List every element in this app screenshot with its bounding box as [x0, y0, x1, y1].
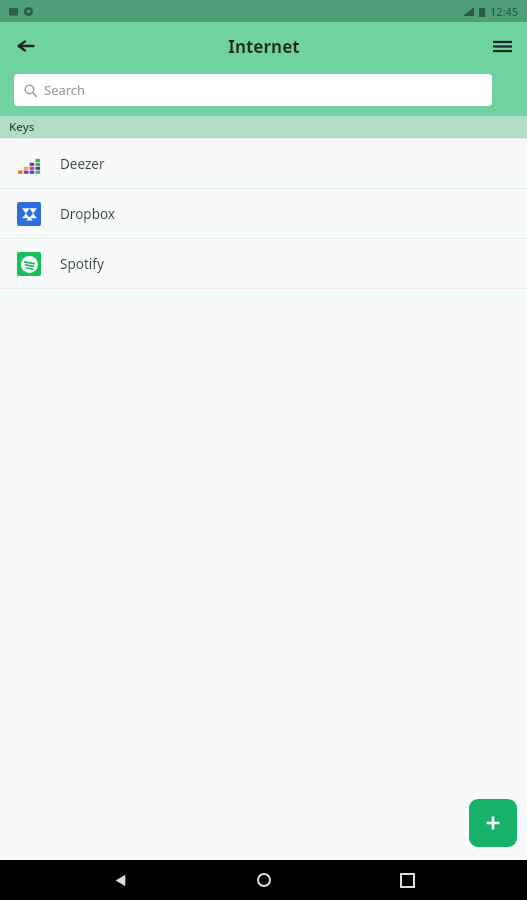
- button[interactable]: Add: [469, 799, 517, 847]
- staticText: Keys: [9, 119, 35, 135]
- button[interactable]: Home: [241, 860, 287, 900]
- staticText: Internet: [228, 35, 300, 58]
- staticText: Search: [44, 81, 86, 99]
- button[interactable]: Back: [97, 860, 143, 900]
- button[interactable]: Back: [6, 26, 46, 66]
- button[interactable]: Dropbox: [0, 189, 527, 238]
- button[interactable]: Deezer: [0, 139, 527, 188]
- staticText: 12:45: [490, 4, 519, 19]
- button[interactable]: Menu: [482, 26, 522, 66]
- button[interactable]: Search: [14, 74, 492, 106]
- button[interactable]: Recents: [384, 860, 430, 900]
- staticText: Spotify: [60, 255, 104, 273]
- staticText: Dropbox: [60, 205, 115, 223]
- staticText: Deezer: [60, 155, 105, 173]
- button[interactable]: Spotify: [0, 239, 527, 288]
